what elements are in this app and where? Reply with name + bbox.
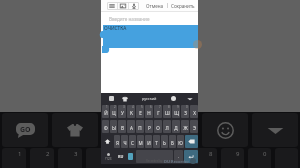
button[interactable]: В — [118, 120, 126, 133]
button[interactable]: Д — [172, 120, 180, 133]
button[interactable]: . — [174, 150, 183, 163]
button[interactable]: Clipboard — [109, 96, 114, 101]
button[interactable]: 4 — [127, 105, 135, 118]
button[interactable]: 8 — [194, 148, 217, 168]
button[interactable]: Б — [169, 135, 176, 148]
button[interactable]: Ф — [102, 120, 109, 133]
button[interactable]: 9 — [172, 105, 180, 118]
staticText: 8 — [168, 105, 170, 109]
button[interactable]: Ю — [177, 135, 184, 148]
staticText: 7 — [182, 150, 186, 158]
staticText: Ч — [123, 140, 127, 146]
button[interactable]: Ж — [181, 120, 189, 133]
button[interactable]: Clipboard — [128, 153, 133, 160]
staticText: 8 — [209, 150, 213, 158]
staticText: Х — [193, 110, 196, 116]
button[interactable]: Space — [136, 150, 173, 163]
button[interactable]: А — [127, 120, 135, 133]
button[interactable]: RU — [116, 149, 126, 164]
button[interactable]: 2 — [110, 105, 117, 118]
button[interactable]: Emoji — [202, 113, 248, 147]
staticText: Н — [147, 110, 151, 116]
button[interactable]: Ь — [161, 135, 168, 148]
staticText: Ы — [112, 125, 116, 131]
staticText: А — [130, 125, 133, 131]
staticText: Л — [165, 125, 169, 131]
button[interactable]: Я — [114, 135, 120, 148]
button[interactable]: 3 — [118, 105, 126, 118]
button[interactable]: Settings — [171, 96, 176, 101]
staticText: Отмена — [146, 3, 164, 9]
staticText: 5 — [141, 105, 143, 109]
button[interactable]: Ы — [110, 120, 117, 133]
button[interactable]: Hide keyboard — [187, 96, 193, 102]
button[interactable]: М — [137, 135, 144, 148]
button[interactable]: Ч — [121, 135, 128, 148]
staticText: Ш — [165, 110, 170, 116]
staticText: DU Recorder — [164, 159, 189, 164]
staticText: Е — [139, 110, 142, 116]
staticText: Э — [193, 125, 196, 131]
button[interactable]: Hide keyboard — [252, 113, 298, 147]
button[interactable]: 9 — [221, 148, 244, 168]
button[interactable]: О — [154, 120, 162, 133]
staticText: К — [130, 110, 133, 116]
button[interactable]: Сохранить — [171, 0, 195, 11]
staticText: Ф — [104, 125, 108, 131]
button[interactable]: Shift — [101, 134, 113, 149]
button[interactable]: 8 — [163, 105, 171, 118]
button[interactable]: Отмена — [146, 0, 164, 11]
button[interactable]: Р — [145, 120, 153, 133]
staticText: 3 — [74, 150, 78, 158]
button[interactable]: 6 — [140, 148, 163, 168]
staticText: С — [131, 140, 134, 146]
button[interactable]: С — [129, 135, 136, 148]
button[interactable]: П — [136, 120, 144, 133]
button[interactable]: Л — [163, 120, 171, 133]
staticText: Recorded by — [146, 159, 163, 163]
button[interactable]: Go — [2, 113, 48, 147]
staticText: . — [178, 154, 180, 159]
button[interactable]: 4 — [86, 148, 109, 168]
button[interactable]: 0 — [248, 148, 271, 168]
button[interactable]: 5 — [113, 148, 136, 168]
button[interactable]: Enter — [184, 150, 198, 163]
button[interactable]: 6 — [145, 105, 153, 118]
button[interactable]: 7 — [167, 148, 190, 168]
staticText: П — [138, 125, 142, 131]
staticText: Ц — [112, 110, 116, 116]
button[interactable]: Э — [190, 120, 198, 133]
staticText: Р — [148, 125, 151, 131]
button[interactable]: ?123 — [101, 149, 116, 164]
staticText: Д — [174, 125, 178, 131]
button[interactable]: Theme — [52, 113, 98, 147]
button[interactable]: 2 — [30, 148, 54, 168]
staticText: 1 — [18, 150, 22, 158]
staticText: Ь — [163, 140, 166, 146]
button[interactable]: И — [145, 135, 152, 148]
button[interactable]: Х — [190, 105, 198, 118]
staticText: В — [121, 125, 124, 131]
button[interactable]: List — [107, 2, 117, 10]
button[interactable]: 0 — [181, 105, 189, 118]
button[interactable]: 3 — [58, 148, 82, 168]
button[interactable]: 5 — [136, 105, 144, 118]
button[interactable]: 1 — [2, 148, 26, 168]
staticText: 3 — [123, 105, 125, 109]
button[interactable]: Т — [153, 135, 160, 148]
button[interactable]: Theme — [122, 96, 128, 102]
staticText: 6 — [150, 105, 152, 109]
staticText: Ж — [183, 125, 188, 131]
button[interactable]: 1 — [102, 105, 109, 118]
staticText: 2 — [46, 150, 50, 158]
button[interactable]: Insert image — [118, 2, 128, 10]
staticText: У — [121, 110, 124, 116]
button[interactable]: 7 — [154, 105, 162, 118]
button[interactable]: Backspace — [185, 135, 198, 148]
staticText: 9 — [236, 150, 240, 158]
button[interactable]: Voice input — [129, 2, 139, 10]
staticText: Ю — [178, 140, 183, 146]
staticText: Т — [155, 140, 158, 146]
